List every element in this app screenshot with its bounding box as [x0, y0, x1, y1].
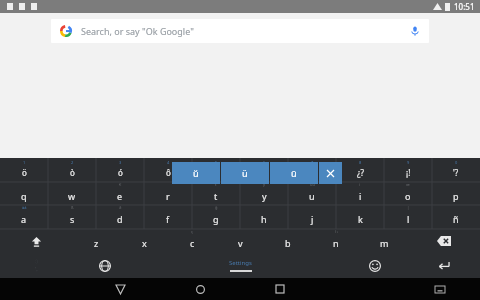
button[interactable]: Emoji — [343, 253, 407, 278]
button[interactable]: | — [384, 205, 432, 229]
staticText: 3 — [119, 160, 122, 165]
button[interactable]: 4 — [144, 158, 192, 205]
staticText: s — [70, 213, 75, 225]
button[interactable]: Settings — [137, 253, 343, 278]
button[interactable]: Shift — [0, 229, 72, 253]
staticText: q — [21, 190, 27, 202]
staticText: ò — [70, 167, 75, 178]
staticText: w — [68, 190, 76, 202]
staticText: 9 — [407, 160, 410, 165]
button[interactable]: 0 — [432, 158, 480, 205]
staticText: ¿? — [357, 167, 364, 178]
staticText: ¡! — [406, 167, 411, 178]
button[interactable]: h — [240, 205, 288, 229]
staticText: h — [261, 213, 267, 225]
staticText: '? — [453, 167, 459, 178]
button[interactable]: ü — [221, 162, 269, 184]
button[interactable]: m — [360, 229, 408, 253]
button[interactable]: ŉ — [312, 229, 360, 253]
staticText: f — [166, 213, 170, 225]
staticText: ÿ — [263, 182, 266, 187]
staticText: i — [359, 190, 362, 202]
button[interactable]: x — [120, 229, 168, 253]
button[interactable]: z — [72, 229, 120, 253]
button[interactable]: ñ — [432, 205, 480, 229]
staticText: z — [94, 237, 99, 249]
other: Voice search — [410, 26, 420, 36]
staticText: ŉ — [335, 229, 338, 234]
button[interactable]: Back — [80, 278, 160, 300]
staticText: ĝ — [215, 205, 218, 210]
button[interactable]: 2 — [48, 158, 96, 205]
staticText: b — [285, 237, 291, 249]
staticText: n — [333, 237, 339, 249]
button[interactable]: ū — [270, 162, 318, 184]
staticText: 2 — [71, 160, 74, 165]
staticText: 6 — [263, 160, 266, 165]
button[interactable]: 3 — [96, 158, 144, 205]
staticText: k — [358, 213, 363, 225]
button[interactable]: f — [144, 205, 192, 229]
button[interactable]: ß — [48, 205, 96, 229]
button[interactable]: 9 — [384, 158, 432, 205]
staticText: ö — [22, 167, 27, 178]
button[interactable]: k — [336, 205, 384, 229]
button[interactable]: 1 — [0, 158, 48, 205]
staticText: r — [166, 190, 170, 202]
staticText: 8 — [359, 160, 362, 165]
button[interactable]: b — [264, 229, 312, 253]
button[interactable]: 7 — [288, 158, 336, 205]
staticText: ó — [118, 167, 123, 178]
button[interactable]: Search, or say "Ok Google" — [51, 19, 429, 43]
button[interactable]: Home — [160, 278, 240, 300]
staticText: | — [407, 205, 410, 210]
staticText: ŭ — [193, 167, 199, 179]
button[interactable]: Close — [319, 162, 342, 184]
button[interactable]: ĝ — [192, 205, 240, 229]
button[interactable]: Change language — [73, 253, 137, 278]
staticText: u — [309, 190, 315, 202]
staticText: àá — [22, 205, 27, 210]
button[interactable]: àá — [0, 205, 48, 229]
button[interactable]: j — [288, 205, 336, 229]
staticText: ï — [359, 182, 361, 187]
staticText: g — [213, 213, 219, 225]
staticText: e — [117, 190, 123, 202]
button[interactable]: 8 — [336, 158, 384, 205]
staticText: ť — [215, 182, 217, 187]
staticText: 5 — [215, 160, 218, 165]
button[interactable]: Keyboard — [400, 278, 480, 300]
staticText: ç — [191, 229, 193, 234]
button[interactable]: ŭ — [172, 162, 220, 184]
staticText: Settings — [229, 259, 252, 267]
staticText: o — [405, 190, 411, 202]
staticText: œ — [406, 182, 410, 187]
staticText: ß — [71, 205, 74, 210]
button[interactable]: 5 — [192, 158, 240, 205]
button[interactable]: 6 — [240, 158, 288, 205]
staticText: 4 — [167, 160, 170, 165]
staticText: ū — [291, 167, 297, 179]
button[interactable]: ð — [96, 205, 144, 229]
staticText: m — [380, 237, 389, 249]
button[interactable]: Enter — [407, 253, 480, 278]
staticText: ü — [242, 167, 248, 179]
staticText: a — [21, 213, 27, 225]
button[interactable]: Backspace — [408, 229, 480, 253]
staticText: y — [262, 190, 267, 202]
staticText: 10:51 — [454, 1, 475, 12]
staticText: ô — [166, 167, 171, 178]
staticText: v — [238, 237, 243, 249]
button[interactable]: v — [216, 229, 264, 253]
staticText: p — [453, 190, 459, 202]
staticText: t — [214, 190, 218, 202]
button[interactable]: ç — [168, 229, 216, 253]
staticText: c — [190, 237, 195, 249]
button[interactable]: Recents — [240, 278, 320, 300]
staticText: ŭŭ — [310, 182, 315, 187]
